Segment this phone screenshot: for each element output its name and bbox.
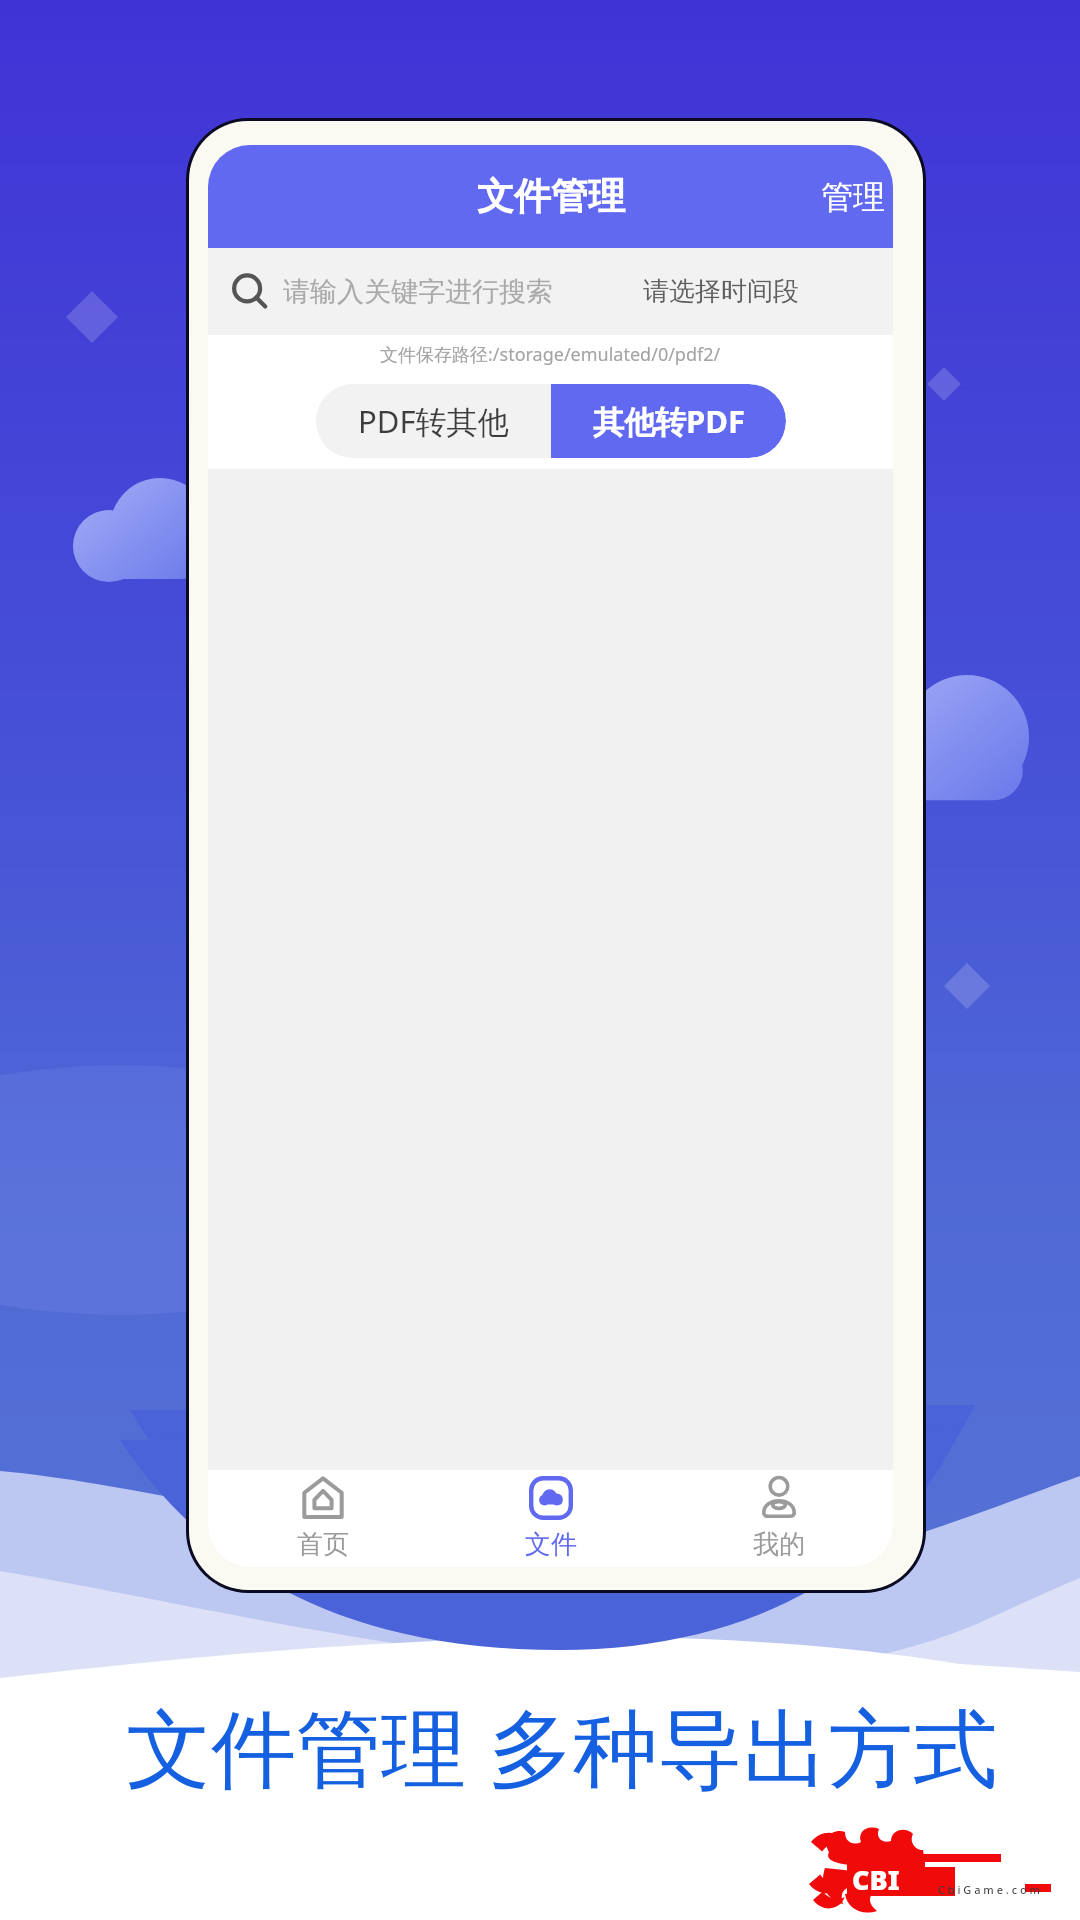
other: Search <box>232 274 268 310</box>
staticText: 文件保存路径:/storage/emulated/0/pdf2/ <box>380 342 721 367</box>
staticText: 请选择时间段 <box>643 275 799 308</box>
staticText: C b i G a m e . c o m <box>938 1882 1040 1897</box>
button[interactable]: 文件 <box>437 1470 665 1567</box>
staticText: 文件 <box>525 1528 577 1561</box>
staticText: PDF转其他 <box>358 400 509 442</box>
button[interactable]: 我的 <box>665 1470 893 1567</box>
staticText: 我的 <box>753 1528 805 1561</box>
staticText: CBI <box>852 1861 900 1898</box>
button[interactable]: 请选择时间段 <box>627 261 815 322</box>
staticText: 其他转PDF <box>593 400 745 442</box>
staticText: 文件管理 多种导出方式 <box>126 1688 999 1804</box>
button[interactable]: PDF转其他 <box>316 384 551 458</box>
staticText: 首页 <box>297 1528 349 1561</box>
staticText: 文件管理 <box>477 173 625 220</box>
staticText: 请输入关键字进行搜索 <box>283 275 553 309</box>
button[interactable]: 首页 <box>208 1470 437 1567</box>
button[interactable]: 其他转PDF <box>551 384 786 458</box>
staticText: 管理 <box>821 177 885 217</box>
button[interactable]: 管理 <box>813 161 893 233</box>
